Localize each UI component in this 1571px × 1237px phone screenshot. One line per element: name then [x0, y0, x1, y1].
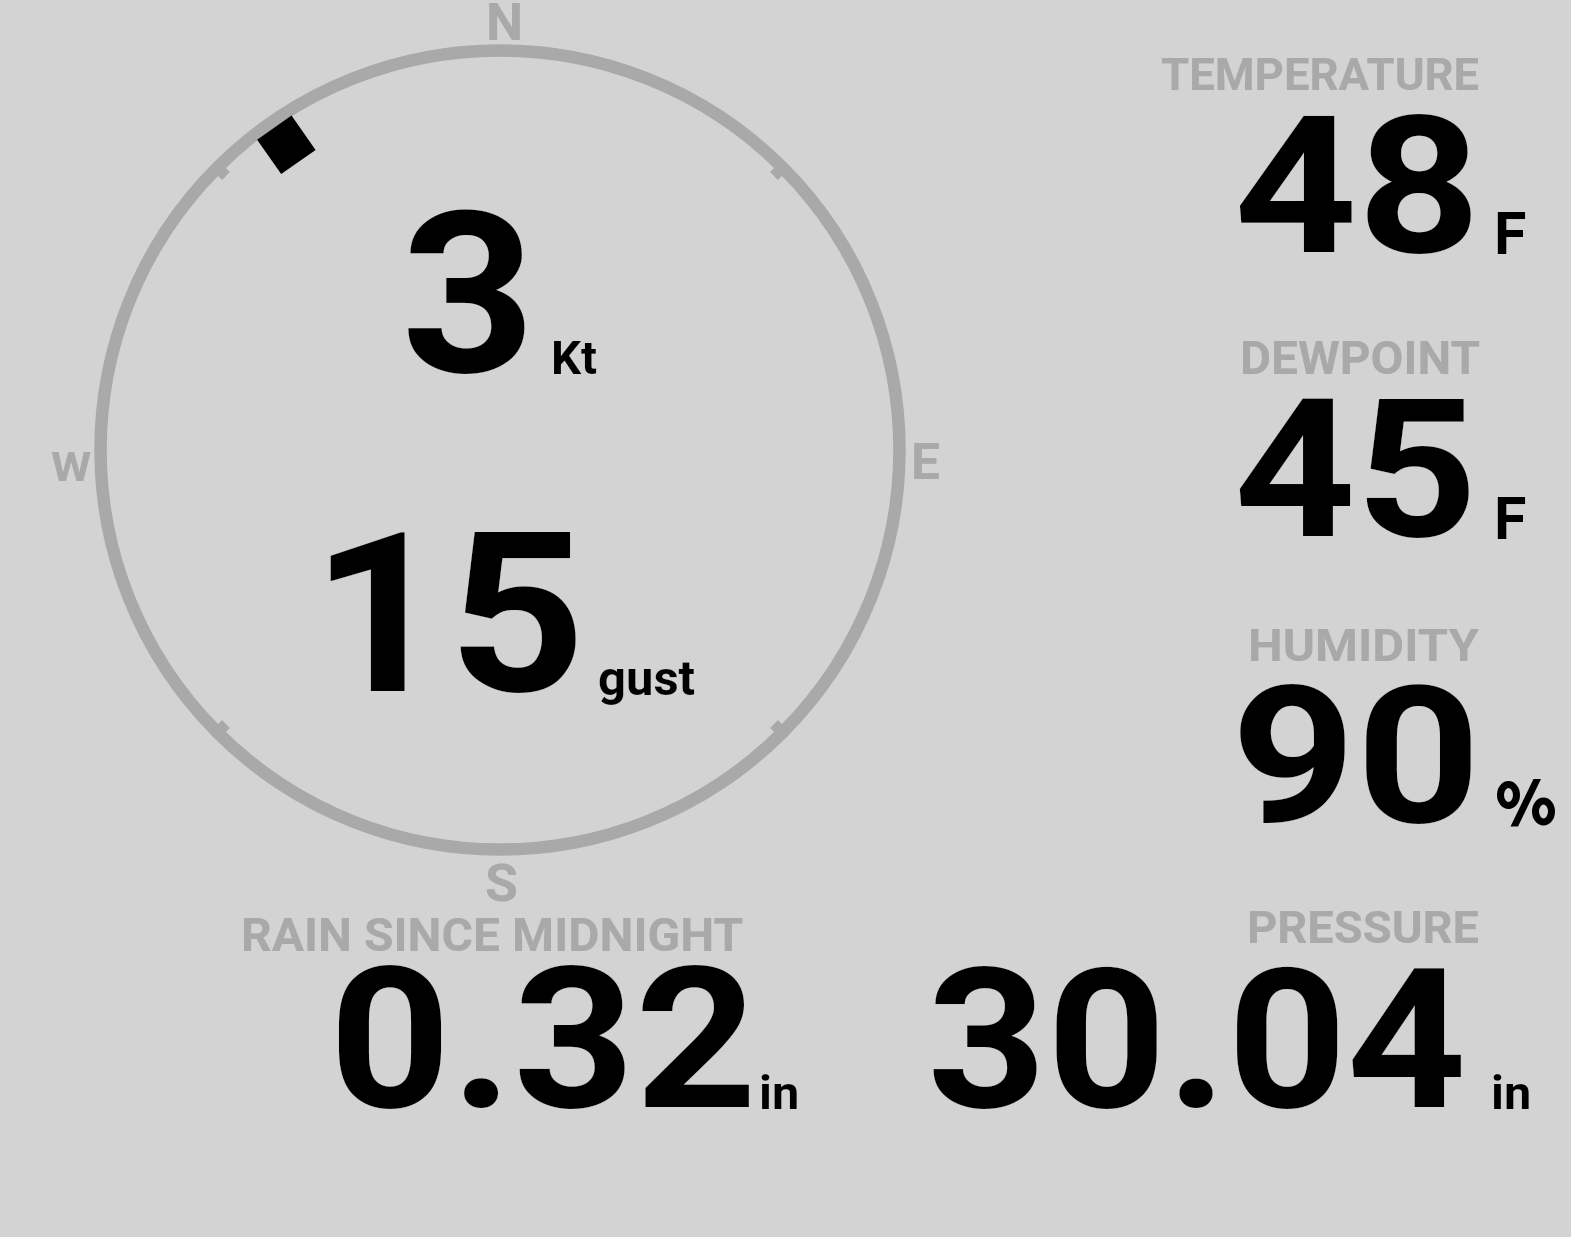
staticText: gust [598, 650, 696, 706]
button[interactable]: Humidity 90 percent [1140, 610, 1570, 840]
staticText: W [51, 444, 91, 491]
staticText: in [1491, 1066, 1532, 1120]
staticText: 45 [1234, 357, 1478, 583]
staticText: 48 [1234, 74, 1481, 299]
button[interactable]: Temperature 48 degrees Fahrenheit [1140, 40, 1560, 270]
staticText: PRESSURE [1247, 901, 1480, 954]
staticText: Kt [551, 331, 597, 385]
staticText: 90 [1231, 645, 1482, 869]
staticText: TEMPERATURE [1161, 49, 1479, 101]
staticText: 3 [401, 163, 537, 427]
staticText: in [759, 1066, 800, 1120]
staticText: E [911, 433, 941, 492]
button[interactable]: Pressure 30.04 inches [920, 900, 1540, 1120]
staticText: DEWPOINT [1240, 332, 1480, 385]
button[interactable]: Wind direction compass, 3 knots, gusting… [94, 44, 906, 856]
staticText: F [1494, 199, 1527, 268]
staticText: 30.04 [927, 926, 1467, 1155]
staticText: N [486, 0, 524, 53]
staticText: HUMIDITY [1248, 619, 1479, 672]
staticText: RAIN SINCE MIDNIGHT [241, 908, 744, 962]
staticText: S [485, 853, 518, 914]
staticText: 15 [311, 485, 586, 745]
button[interactable]: Dewpoint 45 degrees Fahrenheit [1140, 325, 1560, 555]
staticText: F [1494, 484, 1527, 553]
button[interactable]: Rain since midnight 0.32 inches [235, 905, 805, 1120]
staticText: 0.32 [329, 925, 758, 1155]
